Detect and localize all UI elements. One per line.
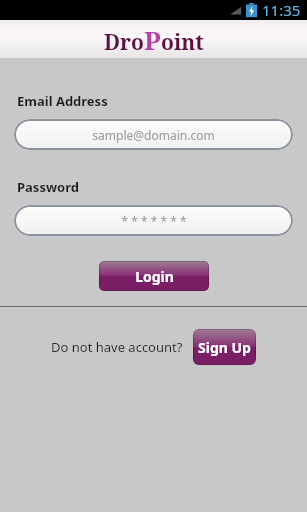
- button[interactable]: Login: [99, 261, 209, 291]
- staticText: 11:35: [262, 0, 301, 20]
- staticText: P: [144, 22, 161, 57]
- staticText: Password: [17, 178, 79, 196]
- staticText: Dro: [104, 28, 144, 57]
- staticText: oint: [161, 28, 204, 57]
- button[interactable]: * * * * * * *: [14, 205, 293, 236]
- button[interactable]: Sign Up: [193, 329, 256, 365]
- staticText: * * * * * * *: [121, 213, 187, 229]
- staticText: sample@domain.com: [92, 127, 215, 143]
- staticText: Login: [135, 267, 174, 286]
- staticText: Email Address: [17, 92, 108, 110]
- staticText: Do not have account?: [51, 338, 183, 356]
- button[interactable]: sample@domain.com: [14, 119, 293, 150]
- staticText: Sign Up: [198, 338, 251, 357]
